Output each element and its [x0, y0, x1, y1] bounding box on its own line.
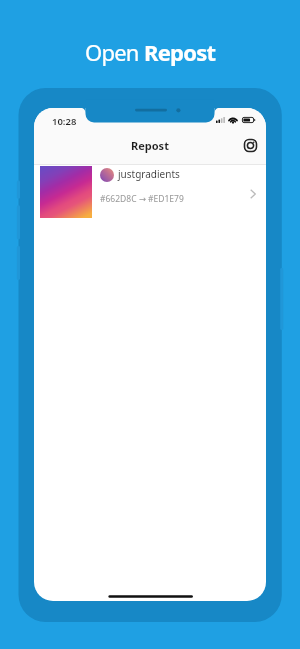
staticText: Repost	[144, 37, 216, 67]
button[interactable]: justgradients	[34, 165, 266, 223]
staticText: 10:28	[52, 115, 77, 128]
staticText: #662D8C → #ED1E79	[100, 193, 184, 205]
staticText: justgradients	[118, 167, 180, 181]
staticText: Open	[85, 37, 144, 67]
staticText: Repost	[131, 138, 169, 153]
button[interactable]: Instagram	[243, 138, 258, 153]
